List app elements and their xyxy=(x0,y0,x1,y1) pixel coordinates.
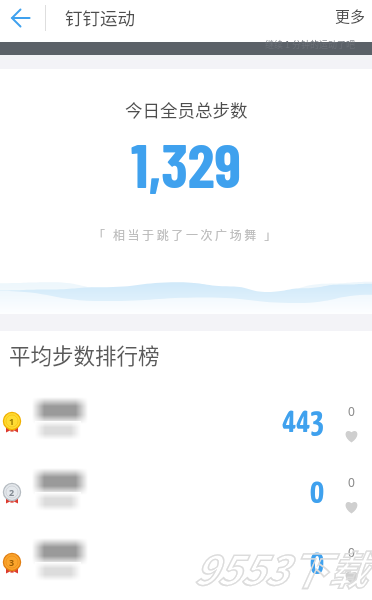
staticText: 更多 xyxy=(335,5,366,27)
staticText: 0 xyxy=(348,403,355,419)
button[interactable]: 3 xyxy=(0,530,372,600)
button[interactable]: 1 xyxy=(0,388,372,459)
staticText: 继续 1 分钟的运动了吧 xyxy=(265,38,356,51)
button[interactable]: 2 xyxy=(0,459,372,530)
staticText: 今日全员总步数 xyxy=(125,97,248,122)
staticText: 0 xyxy=(348,474,355,490)
staticText: 「 相当于跳了一次广场舞 」 xyxy=(93,226,279,243)
staticText: 2 xyxy=(9,486,15,498)
staticText: 0 xyxy=(348,544,355,560)
staticText: 平均步数排行榜 xyxy=(9,339,160,370)
staticText: 0 xyxy=(310,477,325,510)
staticText: 钉钉运动 xyxy=(65,5,135,30)
staticText: 1,329 xyxy=(131,127,242,200)
staticText: 9553下载 xyxy=(193,539,368,597)
staticText: 0 xyxy=(310,548,325,581)
button[interactable]: 更多 xyxy=(323,0,372,35)
staticText: 443 xyxy=(282,406,325,439)
staticText: 3 xyxy=(9,556,15,568)
button[interactable]: Back xyxy=(0,0,40,35)
staticText: 1 xyxy=(9,415,15,427)
